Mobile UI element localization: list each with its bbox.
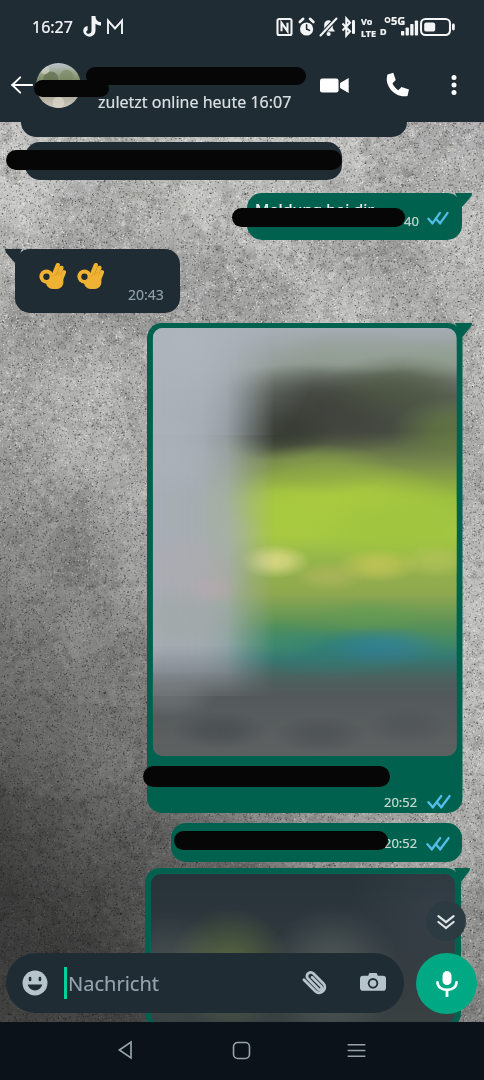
button[interactable]: More options [432,63,476,107]
button[interactable] [36,63,81,108]
button[interactable]: Attach [301,969,329,997]
staticText: zuletzt online heute 16:07 [98,91,292,113]
staticText: 16:27 [32,16,73,38]
staticText: 20:34 [290,157,321,173]
staticText: 40 [404,212,419,230]
staticText: 20:52 [384,834,418,852]
staticText: Vo [361,15,373,27]
staticText: D [380,25,387,37]
staticText: LTE [361,27,377,39]
button[interactable]: Back [105,1030,145,1070]
staticText: Meldung bei dir [255,199,375,221]
button[interactable]: Camera [360,970,386,996]
button[interactable]: zuletzt online heute 16:07 [90,48,308,122]
staticText: 20:43 [128,285,164,304]
staticText: Ja genau die [182,828,275,850]
button[interactable]: Video call [310,61,358,109]
button[interactable]: Scroll to bottom [426,901,466,941]
staticText: Nachricht [68,970,159,997]
staticText: 20:52 [384,793,418,811]
button[interactable]: Home [221,1030,261,1070]
button[interactable]: Nachricht [6,953,404,1013]
button[interactable]: Recent apps [336,1030,376,1070]
staticText: 5G [391,13,406,28]
button[interactable]: Voice call [374,62,420,108]
button[interactable]: Back [2,65,42,105]
staticText: Soo ein Ding wo du es hast [156,761,359,783]
button[interactable]: Record voice message [416,953,477,1014]
